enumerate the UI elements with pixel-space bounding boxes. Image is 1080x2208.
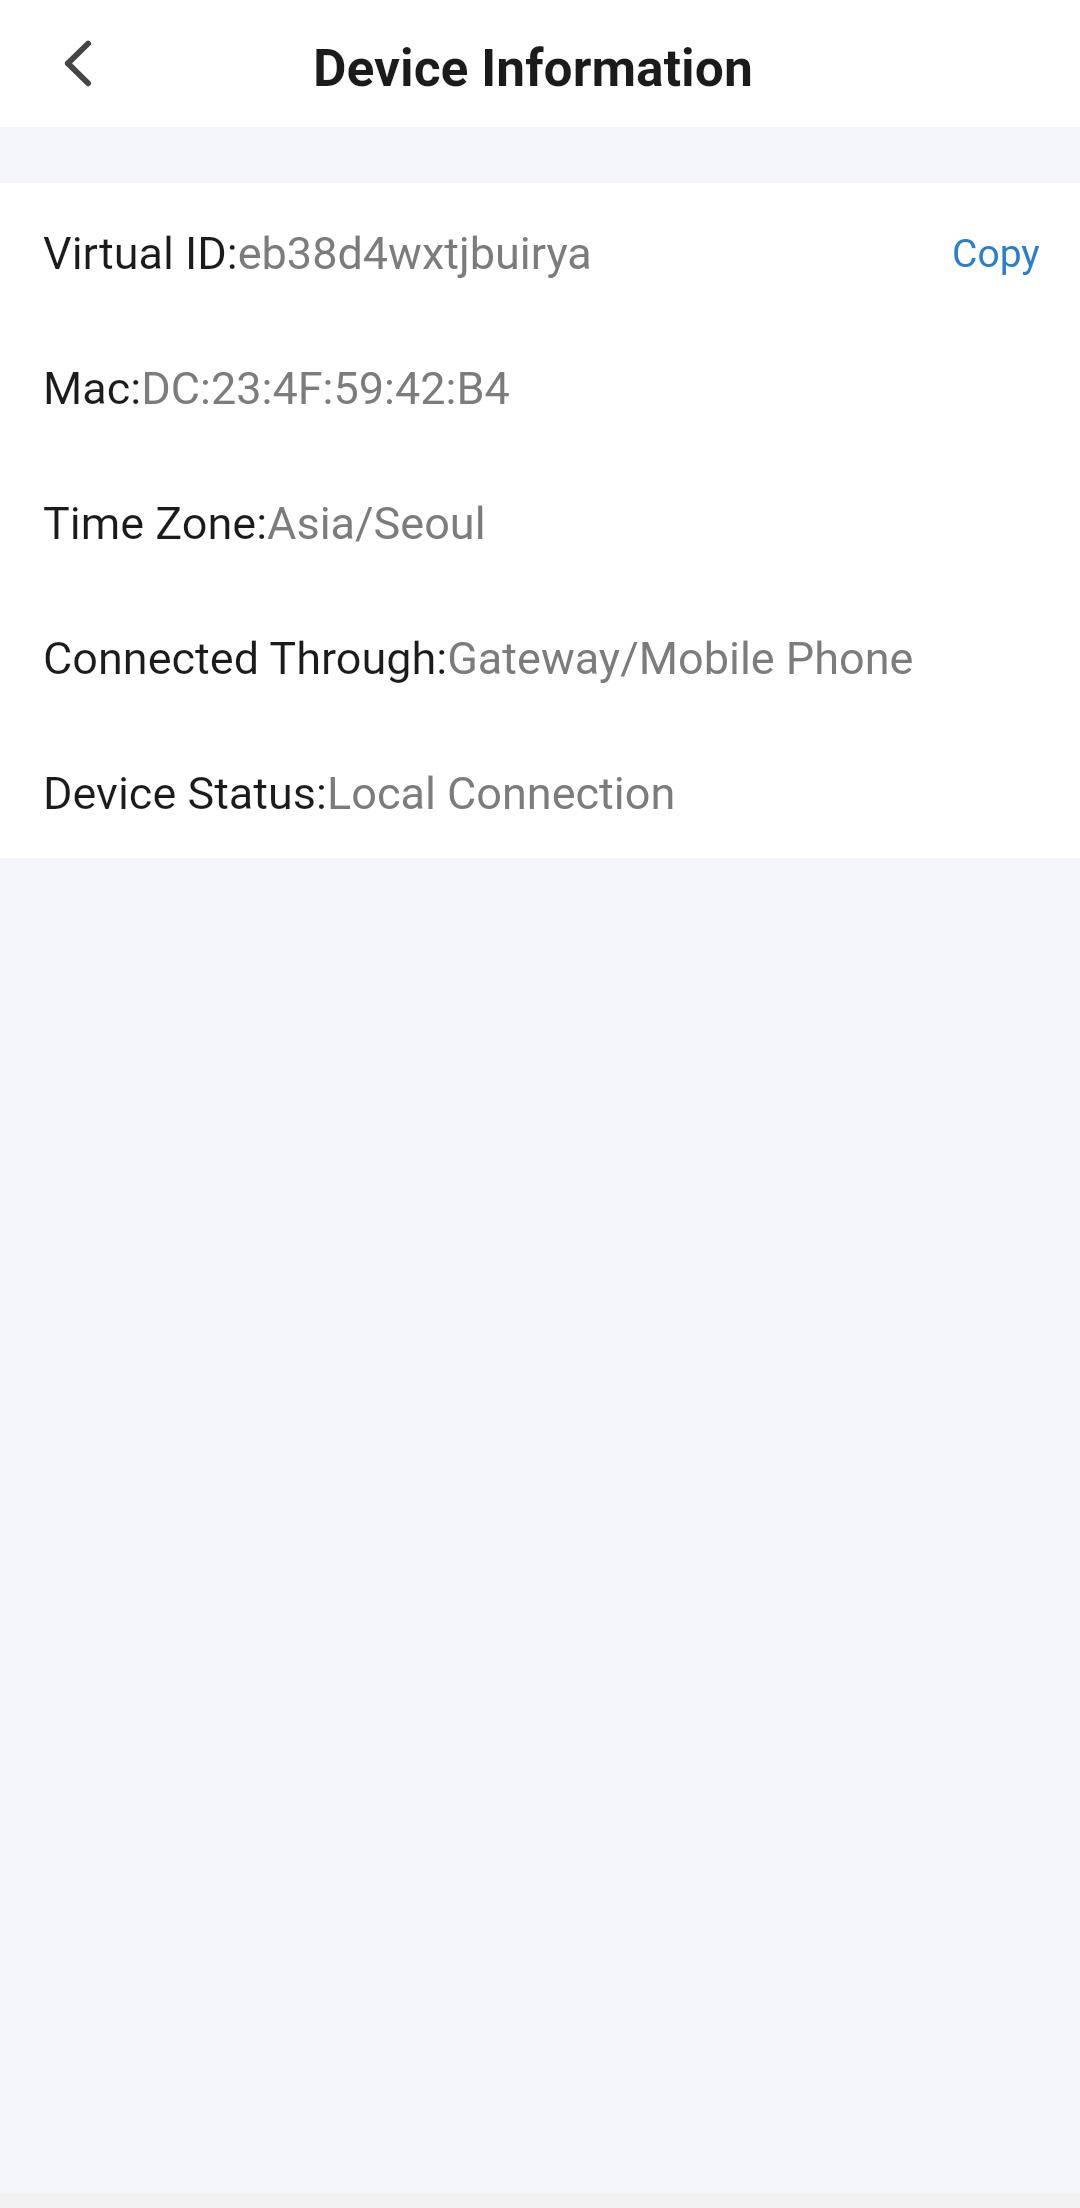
button[interactable]: Back bbox=[0, 0, 156, 127]
button[interactable]: Mac:DC:23:4F:59:42:B4 bbox=[0, 318, 1080, 453]
staticText: Virtual ID:eb38d4wxtjbuirya bbox=[43, 227, 592, 280]
button[interactable]: Virtual ID:eb38d4wxtjbuirya bbox=[0, 183, 1080, 318]
staticText: Mac:DC:23:4F:59:42:B4 bbox=[43, 362, 510, 415]
staticText: Connected Through:Gateway/Mobile Phone bbox=[43, 632, 914, 685]
staticText: Device Information bbox=[313, 38, 753, 98]
button[interactable]: Time Zone:Asia/Seoul bbox=[0, 453, 1080, 588]
staticText: Device Status:Local Connection bbox=[43, 767, 676, 820]
staticText: Time Zone:Asia/Seoul bbox=[43, 497, 486, 550]
staticText: Copy bbox=[952, 231, 1040, 277]
button[interactable]: Device Status:Local Connection bbox=[0, 723, 1080, 858]
button[interactable]: Copy bbox=[916, 186, 1040, 321]
button[interactable]: Connected Through:Gateway/Mobile Phone bbox=[0, 588, 1080, 723]
